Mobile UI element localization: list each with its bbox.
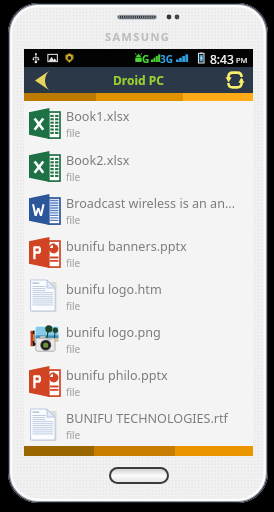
staticText: bunifu logo.htm bbox=[66, 281, 162, 298]
button[interactable]: BUNIFU TECHNOLOGIES.rtf bbox=[24, 403, 253, 446]
staticText: file bbox=[66, 342, 81, 356]
staticText: PM bbox=[236, 55, 248, 65]
staticText: file bbox=[66, 385, 81, 399]
staticText: bunifu logo.png bbox=[66, 324, 161, 341]
staticText: file bbox=[66, 126, 81, 140]
button[interactable]: bunifu banners.pptx bbox=[24, 231, 253, 274]
staticText: Book2.xlsx bbox=[66, 152, 130, 169]
button[interactable]: bunifu logo.png bbox=[24, 317, 253, 360]
button[interactable]: Back bbox=[24, 67, 60, 93]
button[interactable]: bunifu philo.pptx bbox=[24, 360, 253, 403]
staticText: BUNIFU TECHNOLOGIES.rtf bbox=[66, 410, 228, 427]
staticText: SAMSUNG bbox=[105, 29, 171, 44]
button[interactable]: Book1.xlsx bbox=[24, 101, 253, 145]
staticText: file bbox=[66, 428, 81, 442]
staticText: bunifu philo.pptx bbox=[66, 367, 168, 384]
staticText: file bbox=[66, 170, 81, 184]
staticText: 3G bbox=[160, 52, 173, 66]
button[interactable]: Refresh bbox=[217, 67, 253, 93]
button[interactable]: Book2.xlsx bbox=[24, 145, 253, 188]
staticText: Droid PC bbox=[113, 72, 164, 88]
staticText: Book1.xlsx bbox=[66, 108, 130, 125]
staticText: bunifu banners.pptx bbox=[66, 238, 187, 255]
staticText: file bbox=[66, 299, 81, 313]
button[interactable]: Home bbox=[111, 469, 167, 482]
button[interactable]: Broadcast wireless is an an... bbox=[24, 188, 253, 231]
staticText: Broadcast wireless is an an... bbox=[66, 195, 236, 212]
staticText: file bbox=[66, 213, 81, 227]
staticText: file bbox=[66, 256, 81, 270]
staticText: 8:43 bbox=[210, 51, 234, 67]
button[interactable]: bunifu logo.htm bbox=[24, 274, 253, 317]
staticText: G bbox=[142, 52, 150, 66]
